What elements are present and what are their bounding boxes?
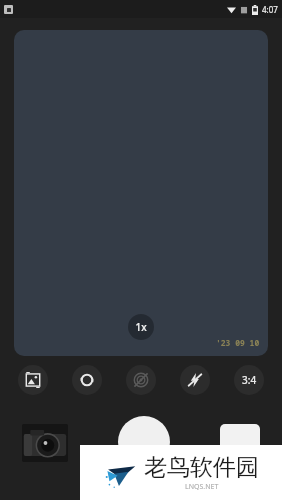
staticText: 1x — [135, 320, 147, 334]
button[interactable]: 1x — [128, 314, 154, 340]
button[interactable]: Flash off — [180, 365, 210, 395]
staticText: LNQS.NET — [185, 482, 219, 492]
button[interactable]: Last photo — [22, 424, 68, 462]
staticText: 老鸟软件园 — [144, 453, 259, 482]
staticText: '23 09 10 — [216, 337, 260, 348]
button[interactable]: Switch mode — [220, 424, 260, 456]
button[interactable]: 3:4 — [234, 365, 264, 395]
staticText: 4:07 — [262, 4, 278, 15]
button[interactable]: Effects off — [126, 365, 156, 395]
staticText: 3:4 — [242, 373, 257, 387]
button[interactable]: Switch camera — [72, 365, 102, 395]
button[interactable]: 1x — [14, 30, 268, 356]
button[interactable]: Gallery filter — [18, 365, 48, 395]
button[interactable]: Shutter — [118, 416, 170, 468]
